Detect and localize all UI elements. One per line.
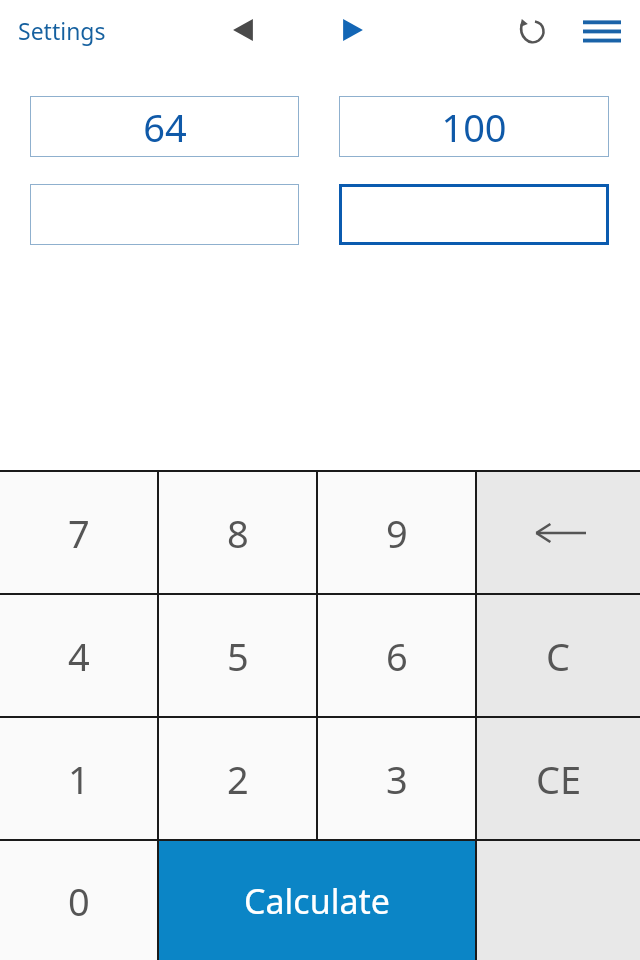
button[interactable]: Undo <box>505 3 559 57</box>
staticText: 8 <box>227 507 249 559</box>
button[interactable]: 7 <box>0 472 157 593</box>
staticText: 9 <box>386 507 408 559</box>
staticText: 3 <box>386 753 408 805</box>
button[interactable]: Previous <box>216 3 270 57</box>
staticText: 7 <box>68 507 90 559</box>
button[interactable]: 6 <box>318 595 475 716</box>
button[interactable] <box>339 184 609 245</box>
staticText: Calculate <box>244 878 390 924</box>
button[interactable]: Menu <box>573 1 631 59</box>
button[interactable]: CE <box>477 718 640 839</box>
button[interactable]: Settings <box>8 9 116 52</box>
button[interactable]: Backspace <box>477 472 640 593</box>
button[interactable]: Calculate <box>159 841 475 960</box>
button[interactable]: 0 <box>0 841 157 960</box>
staticText: Settings <box>18 15 106 46</box>
button[interactable]: 100 <box>339 96 609 157</box>
staticText: 5 <box>227 630 249 682</box>
button[interactable]: 64 <box>30 96 299 157</box>
button[interactable]: 5 <box>159 595 316 716</box>
staticText: 100 <box>441 101 507 153</box>
staticText: CE <box>536 753 582 805</box>
staticText: 64 <box>143 101 187 153</box>
button[interactable]: 4 <box>0 595 157 716</box>
button[interactable]: 9 <box>318 472 475 593</box>
staticText: 6 <box>386 630 408 682</box>
staticText: C <box>546 630 571 682</box>
button[interactable]: 1 <box>0 718 157 839</box>
button[interactable]: C <box>477 595 640 716</box>
staticText: 2 <box>227 753 249 805</box>
button[interactable]: 2 <box>159 718 316 839</box>
staticText: 4 <box>68 630 90 682</box>
staticText: 0 <box>68 875 90 927</box>
staticText: 1 <box>68 753 90 805</box>
button[interactable]: 8 <box>159 472 316 593</box>
button[interactable] <box>30 184 299 245</box>
button[interactable]: Next <box>326 3 380 57</box>
button[interactable]: 3 <box>318 718 475 839</box>
